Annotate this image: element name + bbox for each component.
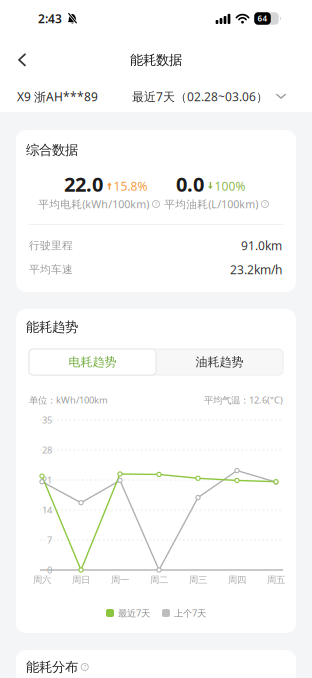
staticText: 14 bbox=[42, 504, 52, 516]
staticText: 22.0 bbox=[64, 171, 103, 197]
button[interactable]: 返回 bbox=[0, 45, 27, 75]
staticText: 7 bbox=[47, 534, 52, 546]
staticText: 21 bbox=[42, 474, 52, 486]
staticText: 周一 bbox=[111, 574, 129, 586]
button[interactable]: X9 浙AH***89 bbox=[17, 88, 98, 104]
staticText: 平均气温：12.6(°C) bbox=[204, 394, 283, 406]
staticText: 平均电耗(kWh/100km) bbox=[38, 197, 149, 211]
staticText: 周五 bbox=[267, 574, 285, 586]
staticText: 周二 bbox=[150, 574, 168, 586]
staticText: 0 bbox=[47, 564, 52, 576]
staticText: X9 浙AH***89 bbox=[17, 88, 98, 104]
staticText: 电耗趋势 bbox=[68, 355, 116, 369]
button[interactable]: 油耗趋势 bbox=[156, 349, 283, 375]
staticText: 23.2km/h bbox=[230, 261, 282, 277]
staticText: ? bbox=[155, 200, 157, 208]
staticText: ? bbox=[264, 200, 266, 208]
staticText: 周三 bbox=[189, 574, 207, 586]
staticText: 最近7天 bbox=[118, 607, 150, 619]
button[interactable]: 电耗趋势 bbox=[29, 349, 156, 375]
staticText: 2:43 bbox=[38, 10, 62, 26]
staticText: 64 bbox=[257, 13, 267, 24]
staticText: 能耗数据 bbox=[130, 52, 182, 68]
staticText: 上个7天 bbox=[174, 607, 206, 619]
button[interactable]: 最近7天（02.28~03.06） bbox=[132, 88, 286, 104]
staticText: 最近7天（02.28~03.06） bbox=[132, 88, 268, 104]
staticText: ? bbox=[84, 663, 86, 671]
button[interactable]: 说明 bbox=[81, 663, 88, 671]
staticText: 91.0km bbox=[241, 237, 282, 253]
staticText: 油耗趋势 bbox=[195, 355, 243, 369]
staticText: 单位：kWh/100km bbox=[29, 394, 108, 406]
staticText: 周四 bbox=[228, 574, 246, 586]
staticText: 100% bbox=[214, 178, 245, 194]
staticText: 平均车速 bbox=[29, 263, 73, 276]
staticText: 周六 bbox=[33, 574, 51, 586]
button[interactable]: 说明 bbox=[261, 200, 269, 208]
staticText: 综合数据 bbox=[26, 142, 78, 158]
staticText: 能耗趋势 bbox=[26, 319, 78, 335]
staticText: 行驶里程 bbox=[29, 239, 73, 252]
staticText: 平均油耗(L/100km) bbox=[164, 197, 258, 211]
button[interactable]: 说明 bbox=[152, 200, 160, 208]
staticText: 周日 bbox=[72, 574, 90, 586]
staticText: 0.0 bbox=[176, 171, 204, 197]
staticText: 35 bbox=[42, 414, 52, 426]
staticText: 能耗分布 bbox=[26, 659, 78, 675]
staticText: 28 bbox=[42, 444, 52, 456]
staticText: 15.8% bbox=[113, 178, 147, 194]
